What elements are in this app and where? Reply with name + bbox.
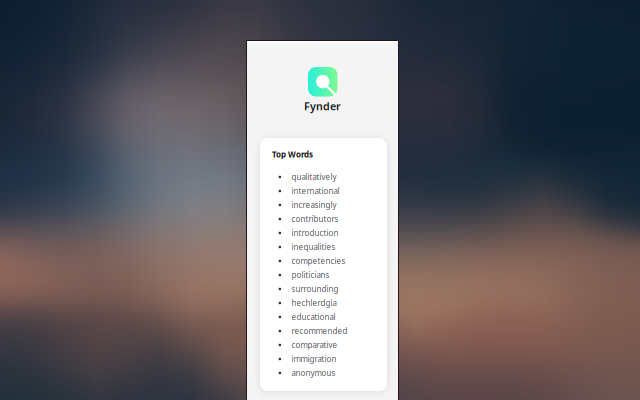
staticText: educational: [292, 312, 336, 322]
button[interactable]: anonymous: [279, 366, 385, 380]
button[interactable]: inequalities: [279, 240, 385, 254]
button[interactable]: immigration: [279, 352, 385, 366]
staticText: politicians: [292, 270, 330, 280]
staticText: inequalities: [292, 242, 336, 252]
staticText: Top Words: [272, 149, 313, 160]
staticText: anonymous: [292, 368, 336, 378]
button[interactable]: increasingly: [279, 198, 385, 212]
button[interactable]: comparative: [279, 338, 385, 352]
button[interactable]: hechlerdgia: [279, 296, 385, 310]
staticText: increasingly: [292, 200, 337, 210]
button[interactable]: contributors: [279, 212, 385, 226]
button[interactable]: politicians: [279, 268, 385, 282]
button[interactable]: international: [279, 184, 385, 198]
staticText: surrounding: [292, 284, 339, 294]
button[interactable]: surrounding: [279, 282, 385, 296]
staticText: recommended: [292, 326, 348, 336]
button[interactable]: qualitatively: [279, 170, 385, 184]
button[interactable]: competencies: [279, 254, 385, 268]
button[interactable]: recommended: [279, 324, 385, 338]
staticText: introduction: [292, 228, 339, 238]
staticText: Fynder: [304, 99, 341, 113]
staticText: comparative: [292, 340, 338, 350]
button[interactable]: educational: [279, 310, 385, 324]
staticText: competencies: [292, 256, 346, 266]
button[interactable]: introduction: [279, 226, 385, 240]
staticText: immigration: [292, 354, 337, 364]
staticText: qualitatively: [292, 172, 337, 182]
staticText: contributors: [292, 214, 339, 224]
staticText: international: [292, 186, 340, 196]
staticText: hechlerdgia: [292, 298, 337, 308]
